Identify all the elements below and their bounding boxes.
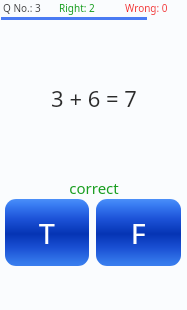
staticText: Right: 2 (59, 1, 95, 15)
staticText: T (39, 214, 55, 252)
button[interactable]: Q No.: 3 (3, 1, 41, 15)
staticText: correct (69, 178, 119, 198)
button[interactable]: F (96, 199, 181, 266)
staticText: 3 + 6 = 7 (51, 83, 137, 113)
staticText: F (131, 214, 146, 252)
staticText: Wrong: 0 (125, 1, 168, 15)
button[interactable]: T (5, 199, 89, 266)
button[interactable]: Wrong: 0 (125, 1, 168, 15)
button[interactable]: Right: 2 (59, 1, 95, 15)
staticText: Q No.: 3 (3, 1, 41, 15)
